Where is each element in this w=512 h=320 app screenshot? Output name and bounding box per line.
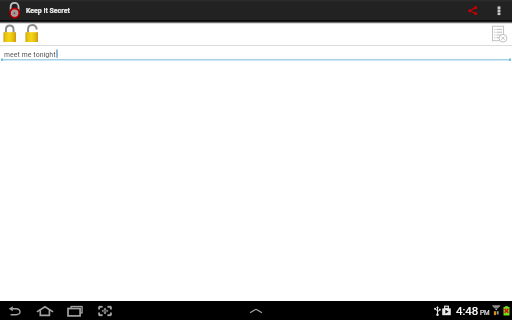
button[interactable]: Back <box>5 301 25 320</box>
button[interactable]: Show notifications <box>246 301 266 320</box>
staticText: Keep It Secret <box>26 7 70 15</box>
button[interactable]: Note text <box>0 46 512 62</box>
staticText: PM <box>480 309 490 317</box>
button[interactable]: Keep It Secret <box>0 0 76 20</box>
button[interactable]: Recent apps <box>65 301 85 320</box>
staticText: 4:48 <box>456 304 479 317</box>
button[interactable]: Decrypt note <box>22 22 42 45</box>
button[interactable]: More options <box>489 0 509 20</box>
button[interactable]: Home <box>35 301 55 320</box>
button[interactable]: Encrypt note <box>0 22 20 45</box>
button[interactable]: Share <box>462 0 484 20</box>
button[interactable]: System status <box>422 301 512 320</box>
button[interactable]: Clear note <box>488 22 510 45</box>
button[interactable]: Screenshot <box>95 301 115 320</box>
staticText: meet me tonight <box>4 50 56 59</box>
